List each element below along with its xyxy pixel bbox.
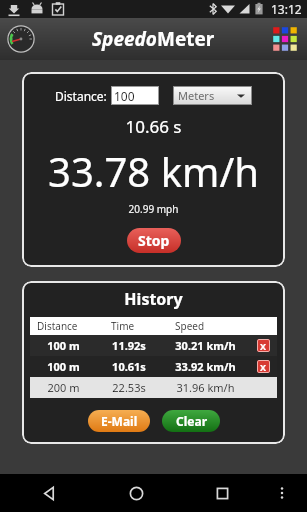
button[interactable]: E-Mail [88, 410, 150, 432]
staticText: X [260, 340, 267, 352]
staticText: 30.21 km/h [161, 338, 250, 353]
staticText: 20.99 mph [22, 202, 285, 216]
staticText: Meters [178, 88, 215, 103]
button[interactable]: More options [265, 474, 299, 512]
button[interactable]: Back [8, 474, 93, 512]
staticText: 100 m [30, 338, 97, 353]
staticText: Time [111, 319, 168, 333]
staticText: History [22, 288, 285, 310]
staticText: 22.53s [97, 380, 161, 395]
staticText: 31.96 km/h [161, 380, 250, 395]
button[interactable]: SpeedoMeter [7, 25, 35, 53]
staticText: 100 m [30, 359, 97, 374]
button[interactable]: Clear [162, 410, 220, 432]
staticText: 33.92 km/h [161, 359, 250, 374]
button[interactable]: Delete entry [257, 339, 270, 352]
button[interactable]: Home [93, 474, 179, 512]
staticText: X [260, 361, 267, 373]
button[interactable]: 200 m [30, 377, 277, 398]
staticText: Meter [157, 26, 215, 52]
staticText: 100 [114, 88, 135, 104]
staticText: Distance: [55, 88, 107, 104]
button[interactable]: 100 [111, 86, 159, 105]
staticText: Clear [176, 413, 207, 429]
staticText: Speed [175, 319, 277, 333]
button[interactable]: 100 m [30, 335, 277, 356]
button[interactable]: Apps [269, 23, 301, 55]
staticText: 11.92s [97, 338, 161, 353]
staticText: Distance [37, 319, 104, 333]
staticText: 10.61s [97, 359, 161, 374]
button[interactable]: Recent apps [179, 474, 265, 512]
button[interactable]: 100 m [30, 356, 277, 377]
button[interactable]: Delete entry [257, 360, 270, 373]
staticText: Speedo [92, 26, 157, 52]
button[interactable]: Stop [127, 228, 181, 253]
button[interactable]: Meters [173, 86, 252, 105]
staticText: 200 m [30, 380, 97, 395]
staticText: Stop [138, 231, 170, 250]
staticText: 13:12 [271, 1, 302, 17]
staticText: 33.78 km/h [22, 144, 285, 198]
staticText: 10.66 s [22, 115, 285, 138]
staticText: E-Mail [101, 413, 138, 429]
